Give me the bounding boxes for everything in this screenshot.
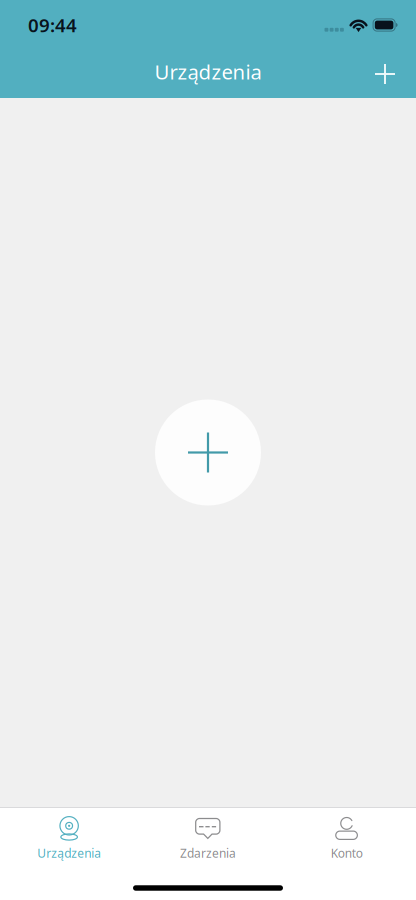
staticText: Zdarzenia: [180, 845, 236, 861]
button[interactable]: Zdarzenia: [139, 808, 277, 863]
button[interactable]: Add device: [155, 399, 261, 505]
staticText: Urządzenia: [37, 845, 101, 861]
button[interactable]: Add device: [363, 52, 407, 96]
staticText: Urządzenia: [154, 58, 261, 85]
staticText: Konto: [331, 845, 363, 861]
button[interactable]: Konto: [277, 808, 416, 863]
staticText: 09:44: [28, 12, 77, 38]
button[interactable]: Urządzenia: [0, 808, 139, 863]
